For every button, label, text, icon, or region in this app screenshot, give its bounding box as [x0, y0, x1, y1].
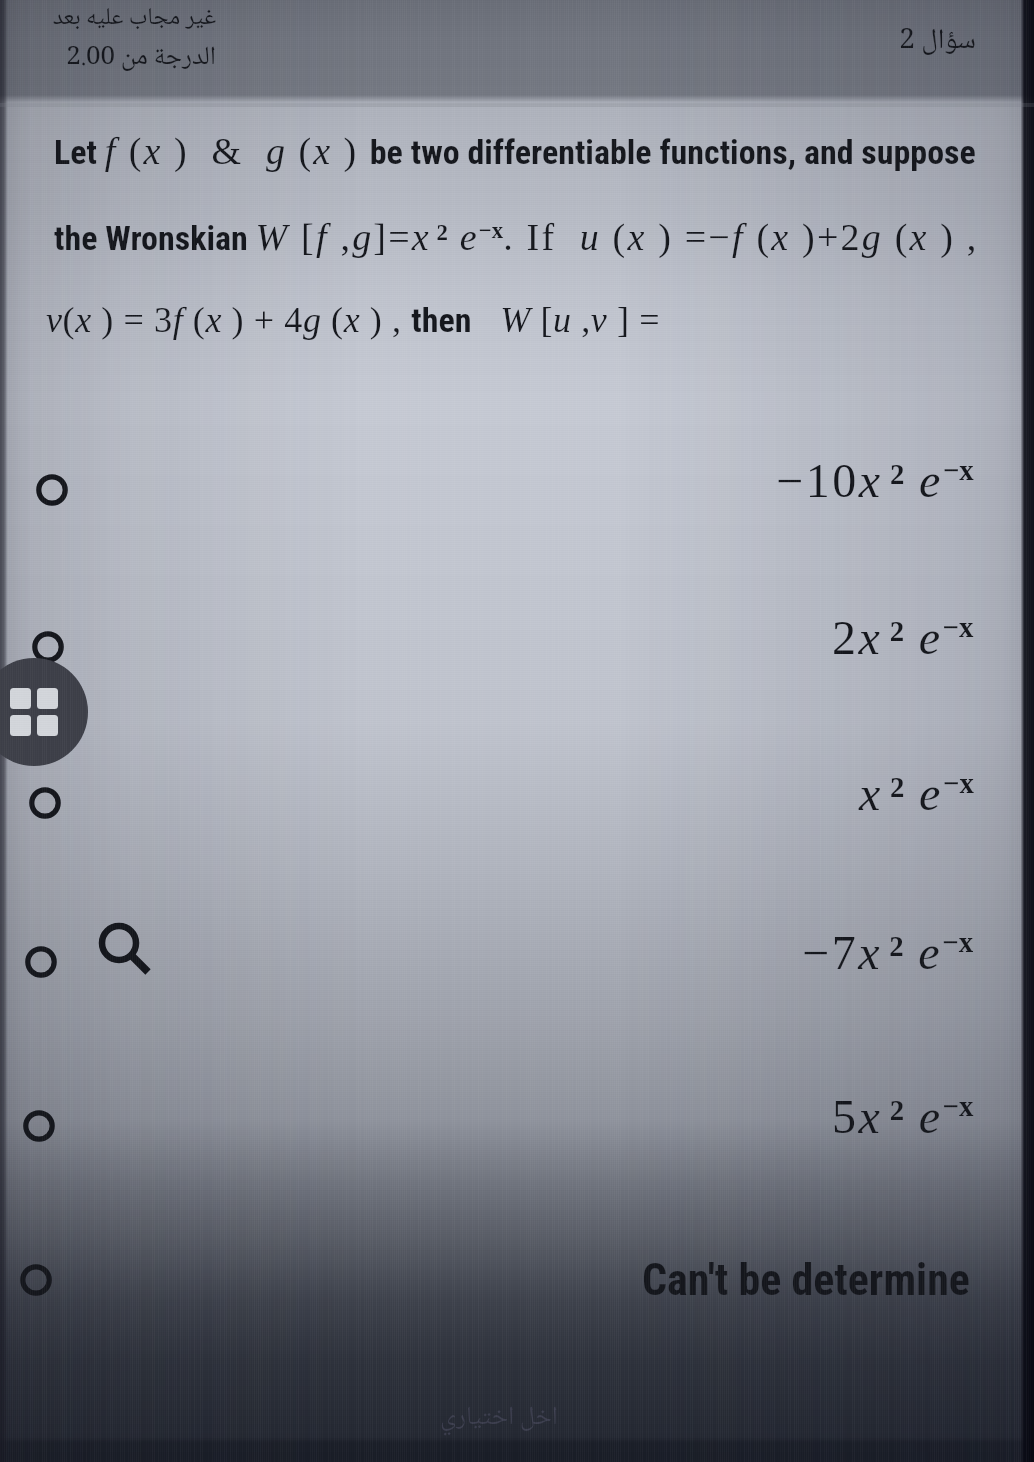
staticText: الدرجة من 2.00 [0, 36, 216, 80]
button[interactable]: Answer option [22, 621, 74, 673]
staticText: x 2 e−x [859, 767, 974, 820]
staticText: Can't be determine [642, 1254, 970, 1306]
button[interactable]: Answer option [26, 464, 78, 516]
button[interactable]: Accessibility menu [0, 658, 88, 766]
button[interactable]: 2x 2 e−x [0, 592, 1034, 682]
button[interactable]: 5x 2 e−x [0, 1071, 1034, 1161]
staticText: v(x ) = 3f (x ) + 4g (x ) , then W [u ,v… [46, 300, 661, 340]
button[interactable]: Answer option [13, 1100, 65, 1152]
staticText: the Wronskian W [f ,g]=x 2 e−x. If u (x … [54, 216, 979, 258]
staticText: 5x 2 e−x [832, 1090, 974, 1143]
button[interactable]: −7x 2 e−x [0, 907, 1034, 997]
staticText: غير مجاب عليه بعد [0, 0, 216, 39]
button[interactable]: Answer option [10, 1254, 62, 1306]
button[interactable]: Answer option [19, 777, 71, 829]
button[interactable]: −10x 2 e−x [0, 435, 1034, 525]
staticText: −7x 2 e−x [802, 926, 974, 979]
button[interactable]: x 2 e−x [0, 748, 1034, 838]
button[interactable]: Answer option [15, 936, 67, 988]
button[interactable]: Can't be determine [0, 1235, 1034, 1325]
staticText: Let f (x ) & g (x ) be two differentiabl… [54, 130, 976, 172]
staticText: سؤال 2 [0, 18, 976, 66]
staticText: 2x 2 e−x [832, 611, 974, 664]
staticText: −10x 2 e−x [776, 454, 974, 507]
staticText: اخل اختياري [440, 1396, 558, 1440]
